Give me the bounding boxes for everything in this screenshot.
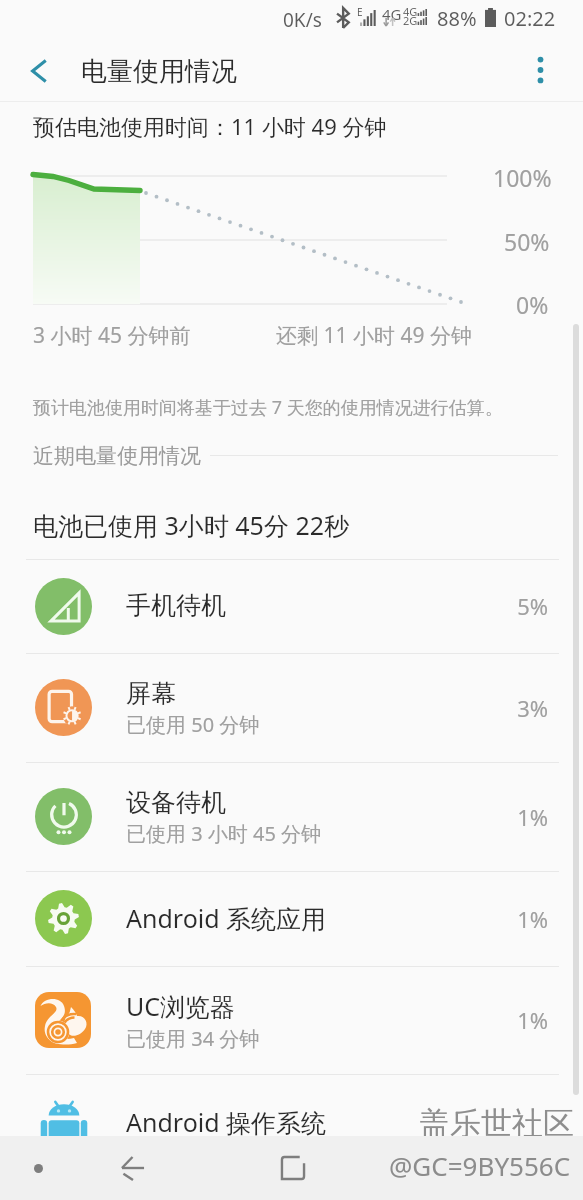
staticText: 盖乐世社区 <box>419 1104 574 1143</box>
staticText: 2G <box>403 13 418 28</box>
staticText: 1% <box>517 802 548 832</box>
staticText: 屏幕 <box>126 678 176 709</box>
staticText: 已使用 34 分钟 <box>126 1025 260 1052</box>
button[interactable]: UC浏览器 <box>0 966 583 1074</box>
staticText: 手机待机 <box>126 590 226 621</box>
button[interactable]: Android 操作系统 <box>0 1074 583 1172</box>
staticText: Android 系统应用 <box>126 901 327 935</box>
staticText: 已使用 3 小时 45 分钟 <box>126 820 322 847</box>
staticText: E <box>357 5 363 19</box>
staticText: 电量使用情况 <box>81 55 237 88</box>
staticText: 近期电量使用情况 <box>33 443 201 469</box>
staticText: 5% <box>517 591 548 621</box>
staticText: 3 小时 45 分钟前 <box>33 321 191 350</box>
button[interactable]: Back <box>96 1136 170 1200</box>
button[interactable]: 设备待机 <box>0 762 583 871</box>
staticText: 50% <box>504 226 550 257</box>
staticText: 已使用 50 分钟 <box>126 711 260 738</box>
button[interactable]: Recent apps <box>256 1136 330 1200</box>
staticText: 设备待机 <box>126 787 226 818</box>
staticText: 3% <box>517 693 548 723</box>
button[interactable]: Menu <box>0 1136 76 1200</box>
staticText: 4G <box>382 4 402 24</box>
staticText: @GC=9BY556C <box>389 1148 571 1183</box>
staticText: 1% <box>517 904 548 934</box>
staticText: 0K/s <box>283 7 322 33</box>
staticText: 0% <box>516 289 549 320</box>
staticText: Android 操作系统 <box>126 1105 327 1139</box>
staticText: UC浏览器 <box>126 989 236 1023</box>
staticText: 4G <box>403 4 418 19</box>
staticText: 预计电池使用时间将基于过去 7 天您的使用情况进行估算。 <box>33 395 503 420</box>
button[interactable]: More options <box>512 42 568 98</box>
staticText: 02:22 <box>504 5 556 32</box>
button[interactable]: 手机待机 <box>0 559 583 653</box>
staticText: 电池已使用 3小时 45分 22秒 <box>33 508 350 542</box>
staticText: 还剩 11 小时 49 分钟 <box>276 321 472 350</box>
button[interactable]: 屏幕 <box>0 653 583 762</box>
staticText: 预估电池使用时间：11 小时 49 分钟 <box>33 111 387 141</box>
staticText: 88% <box>437 5 477 32</box>
button[interactable]: Android 系统应用 <box>0 871 583 966</box>
staticText: 1% <box>517 1005 548 1035</box>
staticText: 100% <box>493 162 552 193</box>
button[interactable]: Back <box>10 42 68 100</box>
